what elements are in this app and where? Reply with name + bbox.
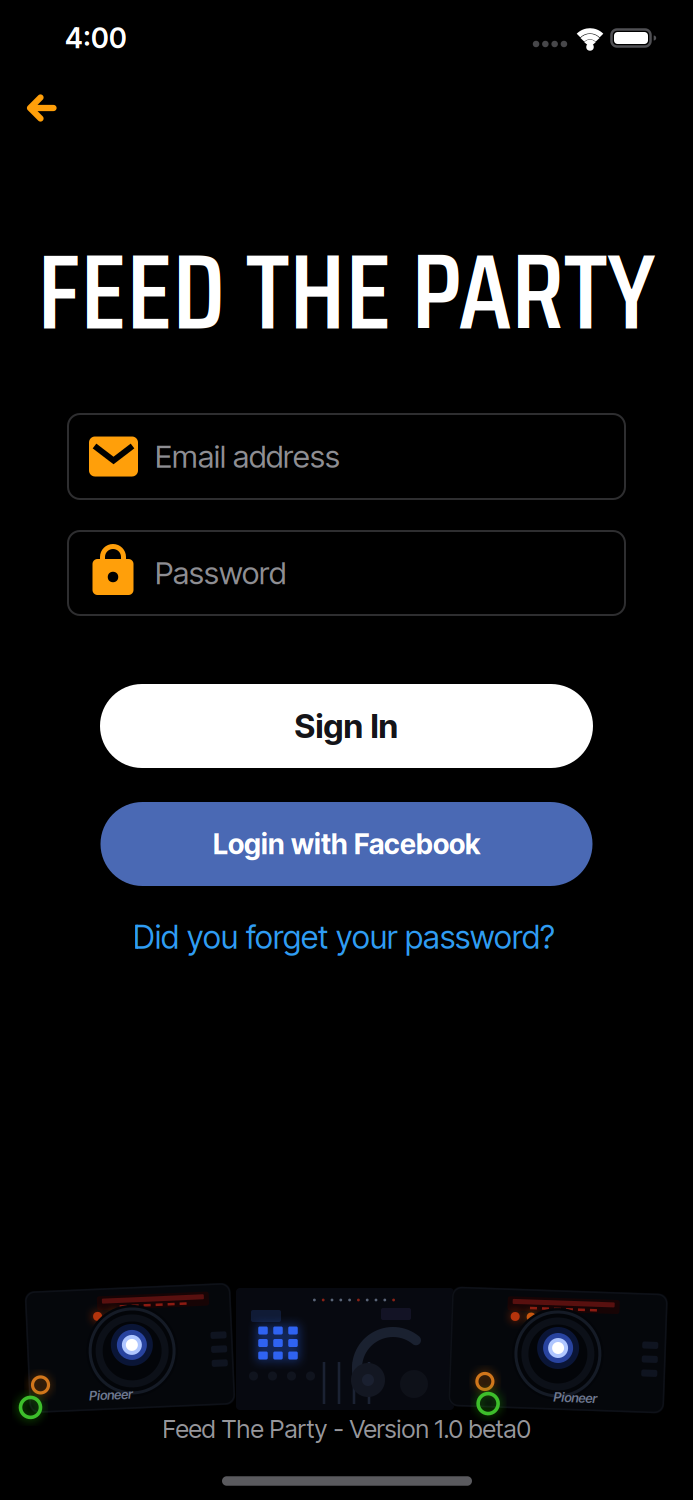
staticText: Pioneer (87, 1386, 131, 1402)
staticText: FEED THE PARTY (37, 208, 655, 375)
button[interactable]: Back (26, 93, 56, 123)
button[interactable]: Login with Facebook (100, 802, 592, 886)
staticText: Login with Facebook (213, 827, 480, 861)
staticText: Did you forget your password? (133, 918, 555, 956)
button[interactable]: Sign In (100, 684, 593, 768)
button[interactable]: Did you forget your password? (133, 918, 555, 956)
staticText: Password (155, 554, 286, 592)
staticText: Email address (155, 438, 340, 475)
staticText: 4:00 (65, 21, 127, 55)
staticText: Sign In (294, 706, 398, 746)
staticText: Feed The Party - Version 1.0 beta0 (162, 1414, 530, 1444)
staticText: Pioneer (555, 1389, 599, 1405)
